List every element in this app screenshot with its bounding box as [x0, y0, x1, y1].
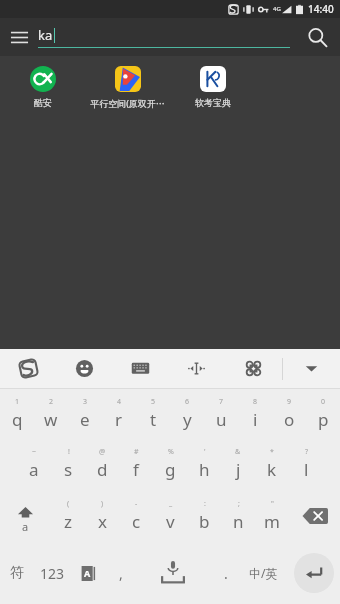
- staticText: ka: [38, 26, 53, 44]
- staticText: :: [204, 499, 206, 509]
- staticText: ?: [305, 447, 309, 457]
- button[interactable]: Move cursor: [168, 349, 225, 388]
- staticText: 软考宝典: [195, 97, 231, 108]
- staticText: w: [44, 408, 58, 431]
- button[interactable]: 0: [306, 389, 340, 439]
- button[interactable]: .: [211, 542, 240, 604]
- staticText: 2: [49, 397, 54, 407]
- button[interactable]: 5: [136, 389, 170, 439]
- staticText: u: [216, 408, 227, 431]
- staticText: r: [115, 408, 123, 431]
- button[interactable]: Collapse keyboard: [283, 349, 340, 388]
- staticText: p: [318, 408, 329, 431]
- staticText: ': [204, 447, 206, 457]
- staticText: b: [199, 510, 210, 533]
- staticText: ): [101, 499, 104, 509]
- button[interactable]: Shift: [0, 489, 51, 542]
- staticText: -: [135, 499, 138, 509]
- staticText: ~: [32, 447, 37, 457]
- button[interactable]: ): [85, 489, 119, 542]
- staticText: %: [168, 447, 174, 457]
- button[interactable]: !: [51, 439, 85, 489]
- staticText: !: [68, 447, 70, 457]
- staticText: _: [169, 499, 173, 509]
- button[interactable]: #: [119, 439, 153, 489]
- button[interactable]: 酷安: [0, 66, 85, 108]
- button[interactable]: 1: [0, 389, 34, 439]
- staticText: @: [99, 447, 106, 457]
- button[interactable]: &: [221, 439, 255, 489]
- button[interactable]: 4: [102, 389, 136, 439]
- staticText: q: [12, 408, 23, 431]
- staticText: &: [235, 447, 241, 457]
- button[interactable]: Space: [135, 542, 211, 604]
- button[interactable]: 123: [33, 542, 71, 604]
- button[interactable]: Keyboard layout: [112, 349, 168, 388]
- button[interactable]: %: [153, 439, 187, 489]
- button[interactable]: Enter: [287, 542, 340, 604]
- staticText: ": [271, 499, 274, 509]
- button[interactable]: Sogou input: [0, 349, 56, 388]
- button[interactable]: Menu: [0, 18, 38, 56]
- button[interactable]: Shortcuts: [225, 349, 282, 388]
- button[interactable]: (: [51, 489, 85, 542]
- staticText: 3: [83, 397, 88, 407]
- button[interactable]: 软考宝典: [170, 66, 255, 108]
- button[interactable]: ;: [221, 489, 255, 542]
- button[interactable]: ": [255, 489, 289, 542]
- button[interactable]: ,: [106, 542, 135, 604]
- staticText: o: [284, 408, 295, 431]
- staticText: (: [67, 499, 70, 509]
- button[interactable]: 9: [272, 389, 306, 439]
- staticText: 8: [253, 397, 258, 407]
- staticText: *: [270, 447, 274, 457]
- staticText: ;: [238, 499, 240, 509]
- button[interactable]: ~: [17, 439, 51, 489]
- staticText: l: [304, 458, 309, 481]
- button[interactable]: 符: [0, 542, 33, 604]
- button[interactable]: ?: [289, 439, 323, 489]
- button[interactable]: :: [187, 489, 221, 542]
- staticText: a: [29, 458, 39, 481]
- button[interactable]: Switch language: [71, 542, 106, 604]
- staticText: 7: [219, 397, 224, 407]
- staticText: e: [80, 408, 90, 431]
- staticText: n: [233, 510, 244, 533]
- button[interactable]: *: [255, 439, 289, 489]
- button[interactable]: 中/英: [240, 542, 287, 604]
- staticText: 123: [40, 564, 65, 583]
- button[interactable]: ': [187, 439, 221, 489]
- button[interactable]: 8: [238, 389, 272, 439]
- staticText: A: [84, 567, 91, 579]
- staticText: s: [64, 458, 73, 481]
- staticText: k: [267, 458, 277, 481]
- staticText: a: [22, 519, 29, 534]
- button[interactable]: 7: [204, 389, 238, 439]
- staticText: 中/英: [249, 565, 278, 581]
- button[interactable]: Emoji: [56, 349, 112, 388]
- staticText: f: [133, 458, 139, 481]
- staticText: h: [199, 458, 210, 481]
- staticText: m: [264, 510, 280, 533]
- button[interactable]: Delete: [289, 489, 340, 542]
- staticText: 6: [185, 397, 190, 407]
- staticText: c: [132, 510, 141, 533]
- button[interactable]: 3: [68, 389, 102, 439]
- button[interactable]: 平行空间(原双开大…: [85, 66, 170, 109]
- staticText: z: [64, 510, 72, 533]
- button[interactable]: 2: [34, 389, 68, 439]
- button[interactable]: @: [85, 439, 119, 489]
- staticText: .: [224, 564, 228, 583]
- staticText: 0: [321, 397, 326, 407]
- staticText: ,: [119, 564, 123, 583]
- button[interactable]: _: [153, 489, 187, 542]
- button[interactable]: Search: [294, 18, 340, 56]
- staticText: 酷安: [34, 97, 52, 108]
- staticText: v: [166, 510, 175, 533]
- staticText: i: [253, 408, 258, 431]
- button[interactable]: 6: [170, 389, 204, 439]
- staticText: 平行空间(原双开大…: [87, 97, 168, 109]
- staticText: 9: [287, 397, 292, 407]
- staticText: x: [98, 510, 107, 533]
- button[interactable]: -: [119, 489, 153, 542]
